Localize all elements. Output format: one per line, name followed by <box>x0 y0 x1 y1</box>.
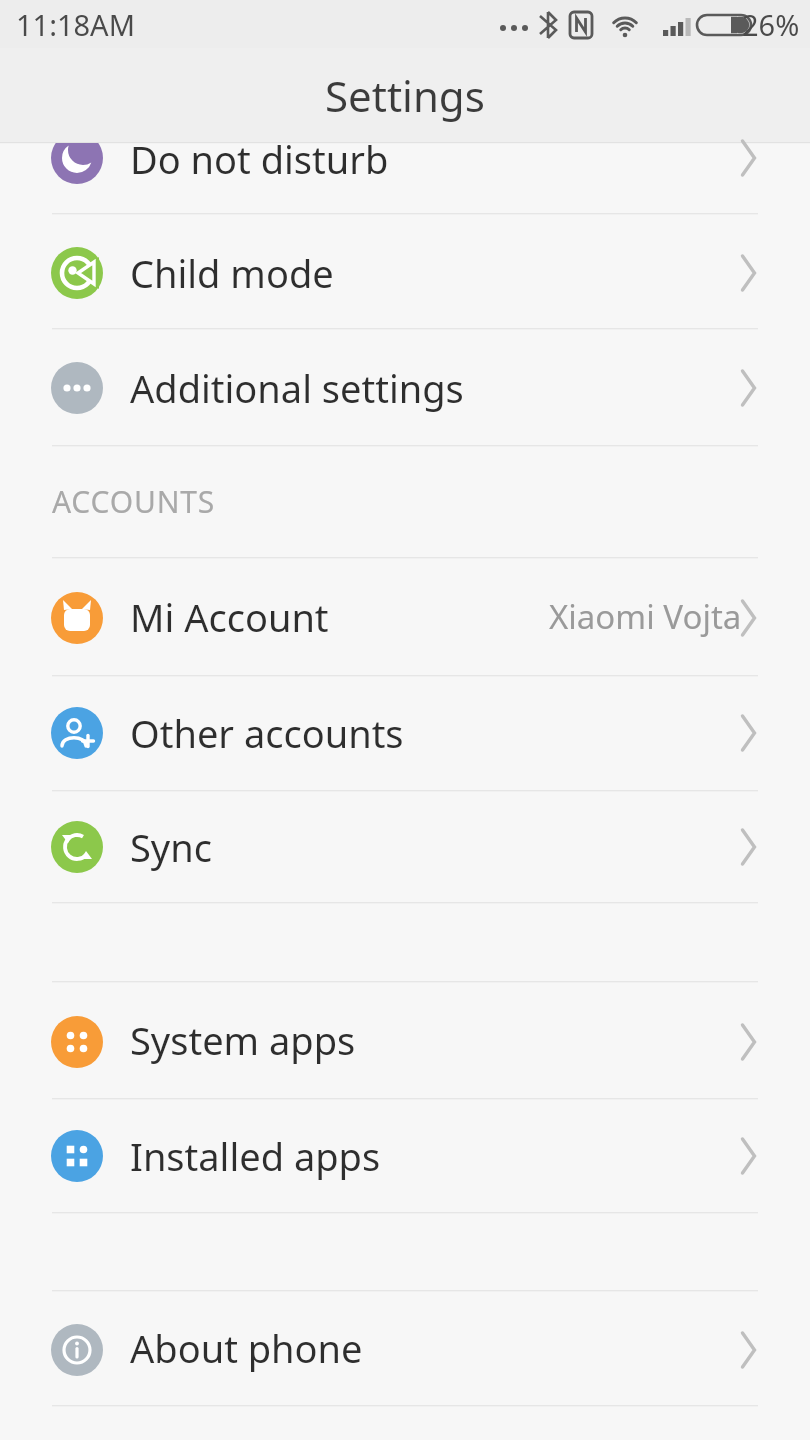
button[interactable]: Mi Account <box>0 558 810 675</box>
staticText: Other accounts <box>130 707 404 759</box>
button[interactable]: About phone <box>0 1291 810 1405</box>
staticText: Sync <box>130 821 212 873</box>
staticText: 26% <box>742 5 800 44</box>
button[interactable]: Do not disturb <box>0 115 810 202</box>
staticText: Mi Account <box>130 591 329 643</box>
button[interactable]: Installed apps <box>0 1099 810 1212</box>
button[interactable]: System apps <box>0 982 810 1098</box>
staticText: About phone <box>130 1322 363 1374</box>
button[interactable]: Sync <box>0 791 810 902</box>
button[interactable]: Additional settings <box>0 331 810 445</box>
staticText: System apps <box>130 1014 356 1066</box>
button[interactable]: Child mode <box>0 216 810 330</box>
staticText: 11:18AM <box>16 5 135 44</box>
staticText: Additional settings <box>130 362 464 414</box>
staticText: Settings <box>325 67 485 124</box>
button[interactable]: Other accounts <box>0 676 810 790</box>
staticText: Child mode <box>130 247 334 299</box>
staticText: Installed apps <box>130 1130 381 1182</box>
staticText: Xiaomi Vojta <box>549 594 742 639</box>
staticText: Do not disturb <box>130 133 389 185</box>
staticText: ACCOUNTS <box>52 481 215 522</box>
